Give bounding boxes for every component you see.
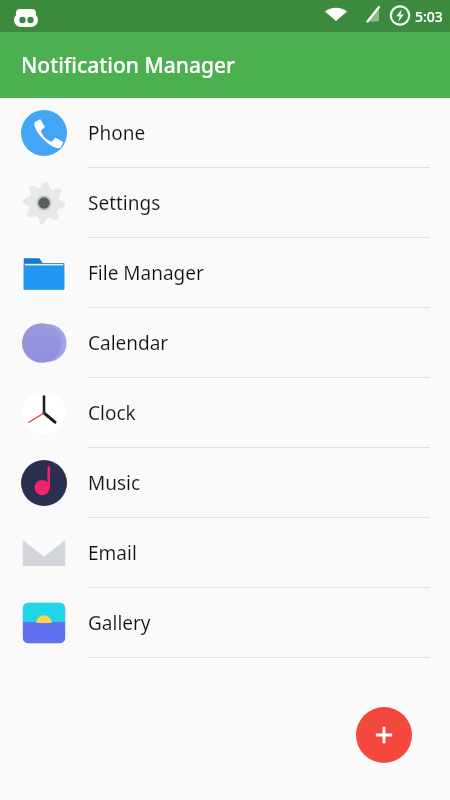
button[interactable]: Phone [0, 98, 450, 168]
button[interactable]: Gallery [0, 588, 450, 658]
staticText: Notification Manager [21, 51, 235, 80]
staticText: 5:03 [415, 7, 443, 26]
staticText: Phone [88, 120, 146, 146]
staticText: File Manager [88, 260, 204, 286]
staticText: Email [88, 540, 137, 566]
staticText: Calendar [88, 330, 169, 356]
button[interactable]: Calendar [0, 308, 450, 378]
button[interactable]: Email [0, 518, 450, 588]
staticText: Music [88, 470, 141, 496]
staticText: Gallery [88, 610, 151, 636]
staticText: Settings [88, 190, 161, 216]
button[interactable]: Music [0, 448, 450, 518]
button[interactable]: Settings [0, 168, 450, 238]
button[interactable]: File Manager [0, 238, 450, 308]
button[interactable]: Clock [0, 378, 450, 448]
staticText: Clock [88, 400, 136, 426]
button[interactable]: Add [356, 707, 412, 763]
